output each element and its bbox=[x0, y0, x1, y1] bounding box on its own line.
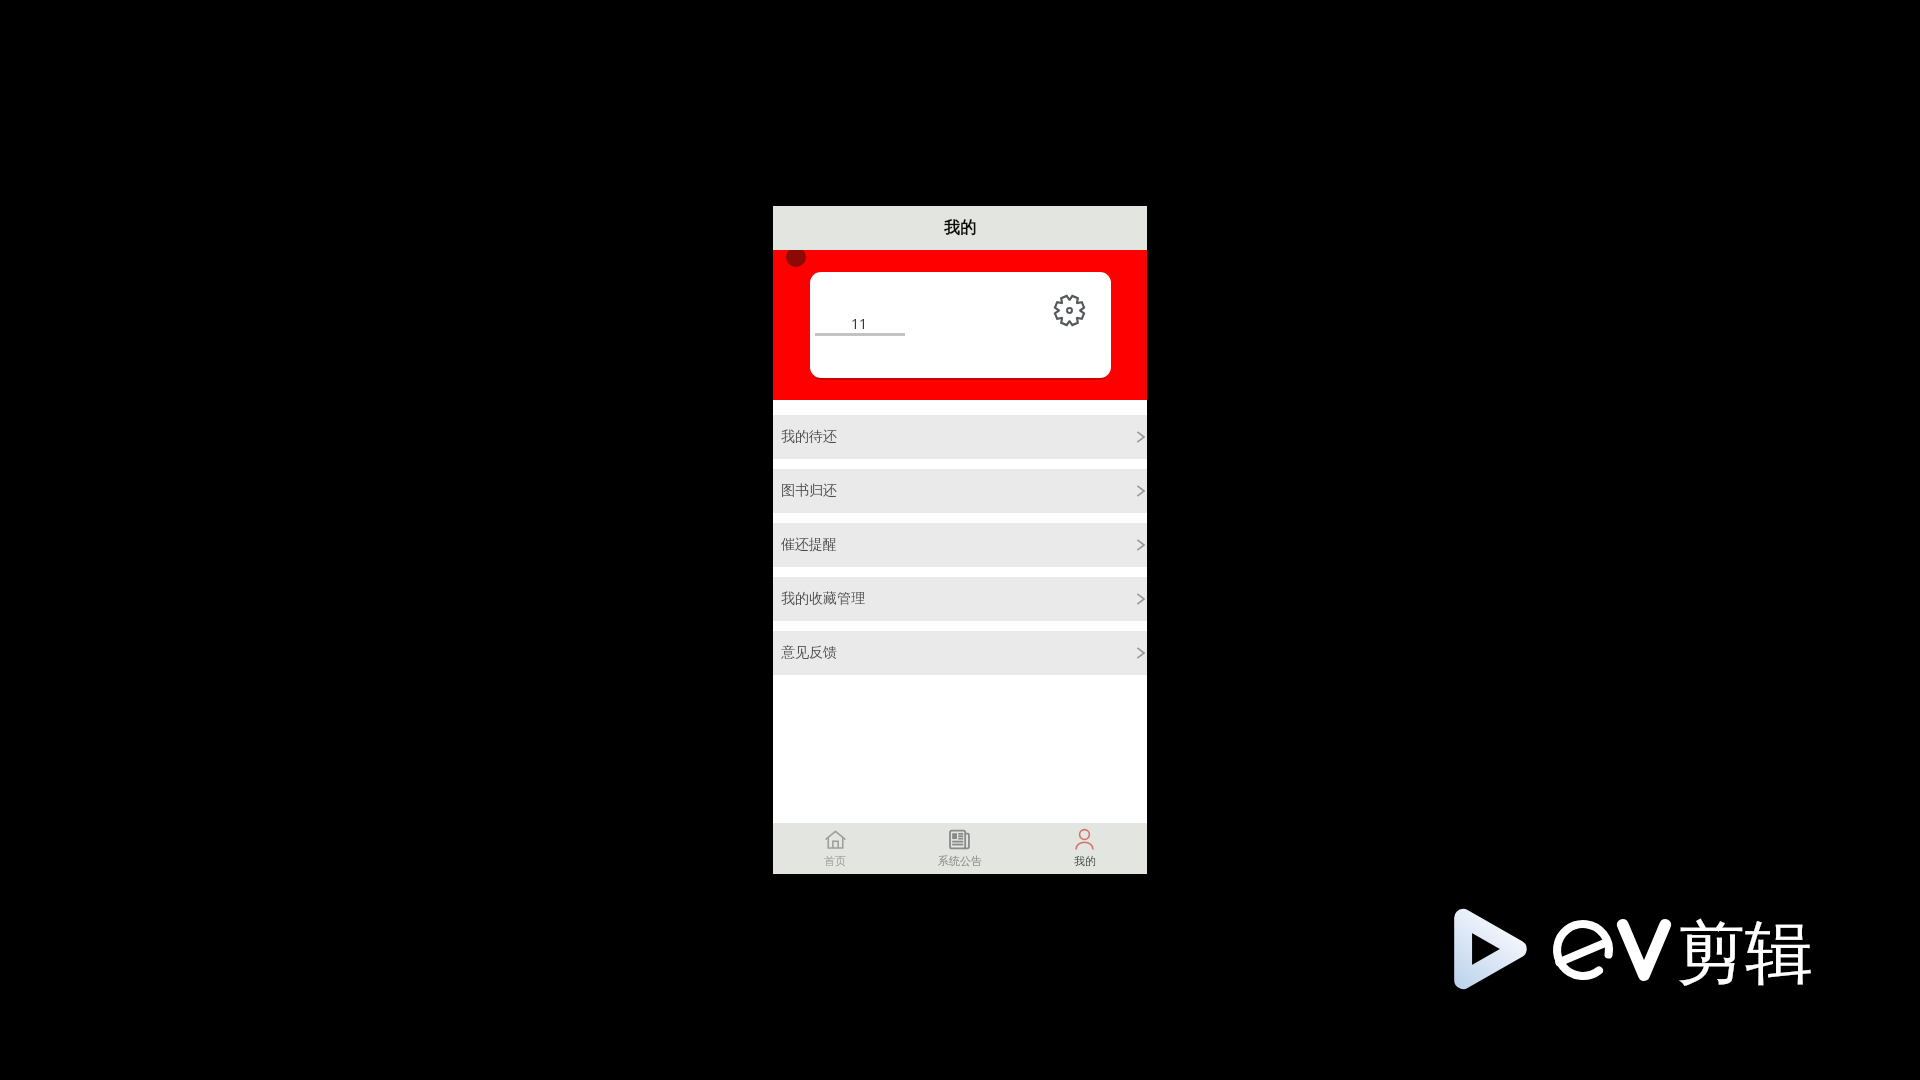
button[interactable]: 我的收藏管理 bbox=[773, 577, 1147, 621]
button[interactable]: 我的待还 bbox=[773, 415, 1147, 459]
staticText: 首页 bbox=[824, 854, 846, 868]
button[interactable]: 图书归还 bbox=[773, 469, 1147, 513]
button[interactable]: Settings bbox=[1053, 294, 1086, 327]
button[interactable]: 系统公告 bbox=[897, 823, 1022, 874]
button[interactable]: 我的 bbox=[1022, 823, 1147, 874]
staticText: 我的收藏管理 bbox=[781, 590, 865, 608]
button[interactable]: 意见反馈 bbox=[773, 631, 1147, 675]
staticText: 我的 bbox=[944, 218, 976, 238]
button[interactable]: 催还提醒 bbox=[773, 523, 1147, 567]
button[interactable]: 首页 bbox=[773, 823, 897, 874]
staticText: 催还提醒 bbox=[781, 536, 837, 554]
staticText: 剪辑 bbox=[1677, 911, 1813, 997]
staticText: 我的 bbox=[1074, 854, 1096, 868]
staticText: 我的待还 bbox=[781, 428, 837, 446]
staticText: 系统公告 bbox=[938, 854, 982, 868]
staticText: 图书归还 bbox=[781, 482, 837, 500]
staticText: 意见反馈 bbox=[781, 644, 837, 662]
staticText: 11 bbox=[851, 314, 868, 333]
